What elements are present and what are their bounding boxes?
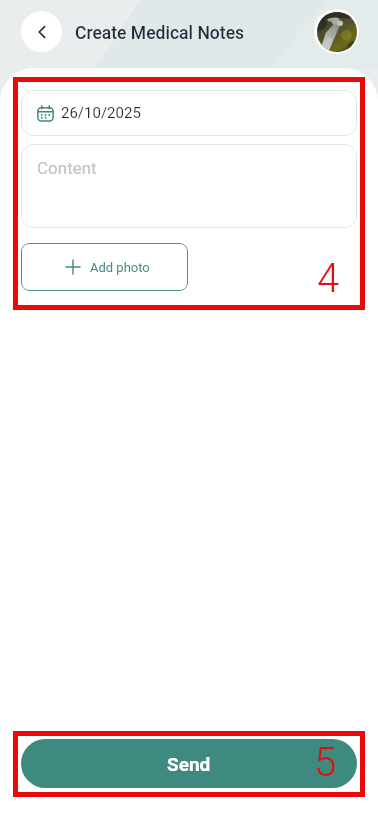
staticText: Add photo xyxy=(90,260,150,275)
button[interactable]: Send xyxy=(21,739,357,788)
staticText: 26/10/2025 xyxy=(61,104,141,122)
button[interactable]: Add photo xyxy=(21,243,188,291)
staticText: Send xyxy=(167,753,211,775)
button[interactable]: Profile xyxy=(314,9,359,54)
button[interactable]: Content xyxy=(21,144,357,228)
staticText: Create Medical Notes xyxy=(75,23,245,44)
staticText: Content xyxy=(37,158,97,178)
button[interactable]: Back xyxy=(21,11,62,52)
staticText: 4 xyxy=(317,255,340,302)
button[interactable]: 26/10/2025 xyxy=(21,90,357,136)
staticText: 5 xyxy=(314,739,337,786)
